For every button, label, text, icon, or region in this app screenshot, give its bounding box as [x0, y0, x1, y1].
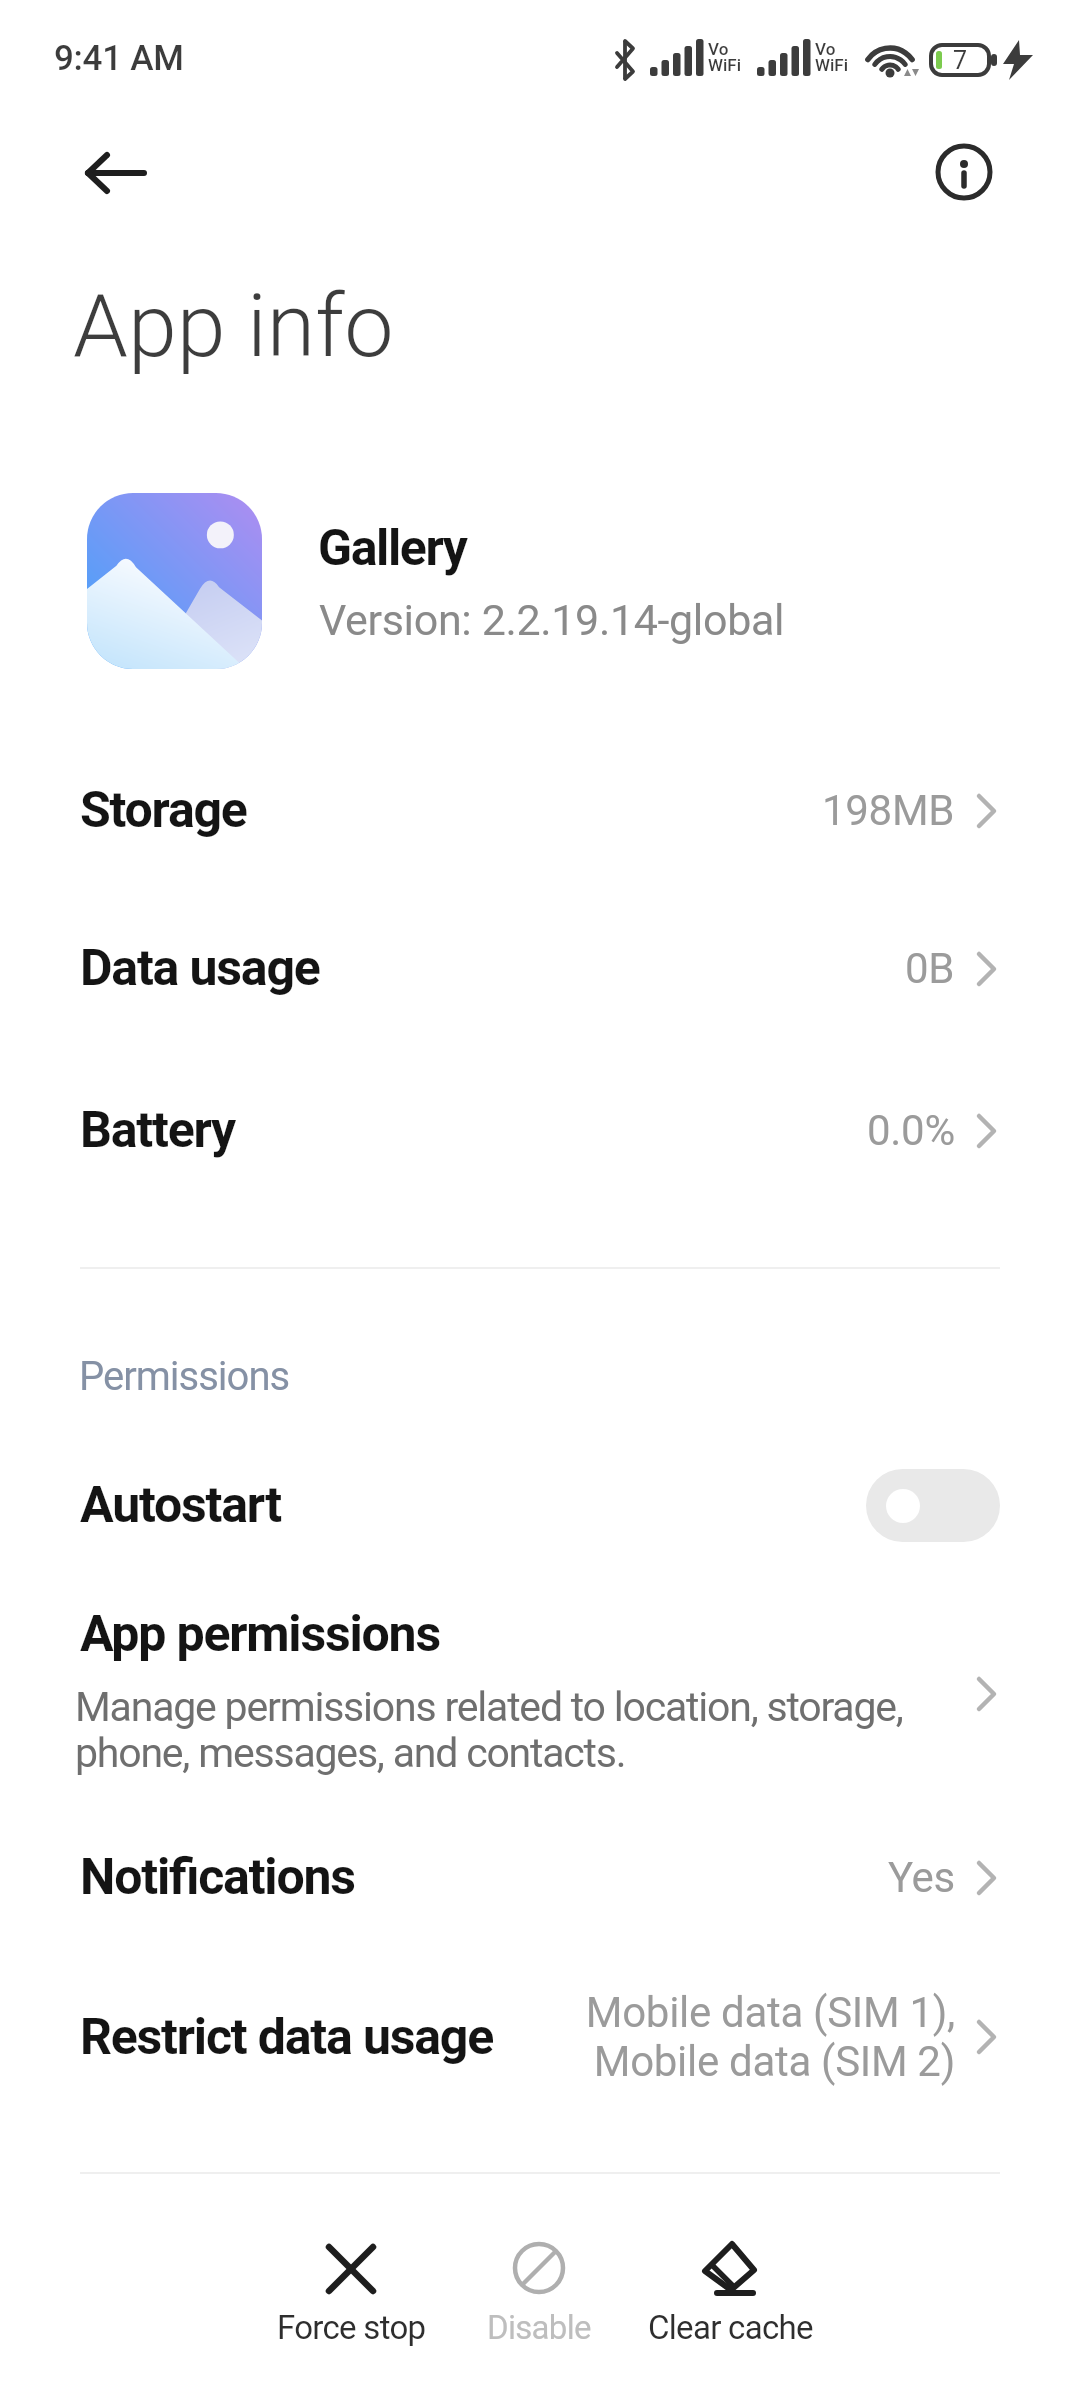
staticText: Data usage: [80, 939, 320, 998]
staticText: 0.0%: [867, 1106, 955, 1155]
staticText: Vo WiFi: [708, 39, 742, 76]
staticText: Mobile data (SIM 1), Mobile data (SIM 2): [585, 1988, 955, 2086]
button[interactable]: Force stop: [246, 2238, 456, 2347]
button[interactable]: [66, 138, 158, 208]
staticText: Vo WiFi: [815, 39, 849, 76]
staticText: 9:41 AM: [54, 38, 184, 79]
staticText: App info: [73, 274, 394, 377]
staticText: 7: [953, 46, 968, 75]
button[interactable]: Clear cache: [625, 2238, 835, 2347]
staticText: 0B: [905, 944, 955, 993]
staticText: Gallery: [318, 519, 467, 578]
staticText: App permissions: [80, 1605, 440, 1664]
button[interactable]: Data usage: [0, 903, 1080, 1033]
button[interactable]: App permissions: [0, 1580, 1080, 1808]
staticText: Clear cache: [648, 2308, 813, 2347]
staticText: Storage: [80, 781, 247, 840]
button[interactable]: [930, 138, 998, 206]
button[interactable]: Autostart: [0, 1440, 1080, 1570]
staticText: Permissions: [79, 1353, 290, 1400]
staticText: Notifications: [80, 1848, 355, 1907]
button[interactable]: Restrict data usage: [0, 1957, 1080, 2117]
button[interactable]: Notifications: [0, 1812, 1080, 1942]
staticText: Disable: [487, 2308, 591, 2347]
button[interactable]: Battery: [0, 1065, 1080, 1195]
staticText: 198MB: [822, 786, 955, 835]
staticText: Autostart: [80, 1476, 281, 1535]
staticText: Force stop: [277, 2308, 426, 2347]
staticText: Yes: [888, 1853, 955, 1902]
staticText: Battery: [80, 1101, 235, 1160]
staticText: Version: 2.2.19.14-global: [319, 595, 785, 645]
staticText: Restrict data usage: [80, 2008, 494, 2067]
button[interactable]: Disable: [434, 2238, 644, 2347]
staticText: Manage permissions related to location, …: [75, 1683, 903, 1777]
button[interactable]: Storage: [0, 745, 1080, 875]
